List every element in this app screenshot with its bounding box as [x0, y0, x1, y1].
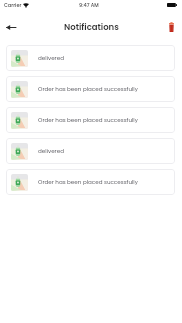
staticText: Notifications [64, 21, 119, 33]
button[interactable]: Back [2, 18, 20, 36]
staticText: Order has been placed successfully [38, 116, 138, 124]
button[interactable]: delivered [6, 45, 175, 71]
staticText: delivered [38, 54, 64, 62]
button[interactable]: Order has been placed successfully [6, 107, 175, 133]
button[interactable]: delivered [6, 138, 175, 164]
staticText: Order has been placed successfully [38, 85, 138, 93]
button[interactable]: Order has been placed successfully [6, 76, 175, 102]
staticText: delivered [38, 147, 64, 155]
button[interactable]: Order has been placed successfully [6, 169, 175, 195]
staticText: Order has been placed successfully [38, 178, 138, 186]
staticText: 9:47 AM [79, 2, 99, 9]
button[interactable]: Delete all [164, 20, 178, 34]
staticText: Carrier [4, 2, 22, 9]
